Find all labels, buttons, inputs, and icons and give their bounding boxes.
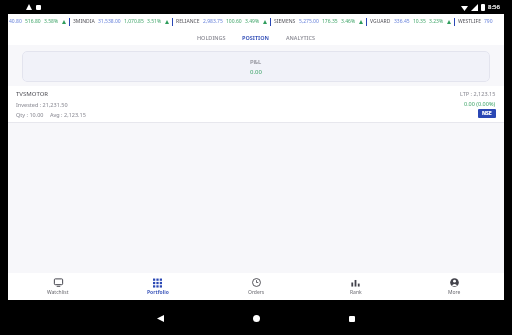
staticText: 3.23% (429, 18, 444, 25)
staticText: 10.35 (413, 18, 426, 25)
button[interactable]: 3MINDIA (73, 18, 169, 25)
staticText: More (448, 289, 461, 296)
staticText: RELIANCE (176, 18, 200, 25)
button[interactable]: Orders (207, 273, 306, 300)
staticText: WESTLIFE (458, 18, 481, 25)
button[interactable]: NSE (478, 109, 496, 118)
staticText: Avg : 2,123.15 (50, 111, 86, 118)
staticText: Invested : 21,231.50 (16, 101, 68, 108)
staticText: 0.00 (250, 68, 262, 76)
button[interactable]: RELIANCE (176, 18, 267, 25)
button[interactable]: Rank (306, 273, 405, 300)
staticText: 2,983.75 (203, 18, 223, 25)
staticText: 1,070.85 (124, 18, 144, 25)
button[interactable]: ANALYTICS (284, 32, 318, 43)
staticText: Watchlist (47, 289, 69, 296)
button[interactable]: Portfolio (108, 273, 207, 300)
button[interactable]: POSITION (240, 32, 272, 43)
staticText: 790 (484, 18, 493, 25)
button[interactable]: P&L (22, 51, 490, 82)
staticText: 176.35 (322, 18, 338, 25)
staticText: SIEMENS (274, 18, 296, 25)
button[interactable]: Watchlist (8, 273, 108, 300)
button[interactable]: HOLDINGS (195, 32, 228, 43)
staticText: 3.51% (147, 18, 162, 25)
button[interactable]: 40.80 (9, 18, 66, 25)
button[interactable]: More (405, 273, 504, 300)
staticText: 3.49% (245, 18, 260, 25)
staticText: 8:56 (488, 3, 500, 11)
staticText: VGUARD (370, 18, 391, 25)
staticText: 0.00 (0.00%) (464, 100, 496, 107)
staticText: POSITION (242, 34, 270, 41)
staticText: 3.46% (341, 18, 356, 25)
staticText: 516.80 (25, 18, 41, 25)
staticText: LTP : 2,123.15 (460, 90, 496, 97)
button[interactable]: Back (112, 302, 208, 335)
staticText: NSE (482, 110, 492, 117)
button[interactable]: WESTLIFE (458, 18, 493, 25)
staticText: Rank (350, 289, 362, 296)
button[interactable]: Home (208, 302, 304, 335)
staticText: 31,538.00 (98, 18, 121, 25)
staticText: ANALYTICS (286, 34, 316, 41)
staticText: 3MINDIA (73, 18, 95, 25)
button[interactable]: TVSMOTOR (8, 86, 504, 123)
button[interactable]: Recents (304, 302, 400, 335)
staticText: 5,275.00 (299, 18, 319, 25)
button[interactable]: SIEMENS (274, 18, 363, 25)
button[interactable]: VGUARD (370, 18, 451, 25)
staticText: TVSMOTOR (16, 90, 49, 98)
staticText: Portfolio (147, 289, 169, 296)
staticText: Qty : 10.00 (16, 111, 44, 118)
staticText: 40.80 (9, 18, 22, 25)
staticText: 100.60 (226, 18, 242, 25)
staticText: HOLDINGS (197, 34, 226, 41)
staticText: Orders (248, 289, 265, 296)
staticText: 336.45 (394, 18, 410, 25)
staticText: 3.58% (44, 18, 59, 25)
staticText: P&L (250, 58, 262, 66)
